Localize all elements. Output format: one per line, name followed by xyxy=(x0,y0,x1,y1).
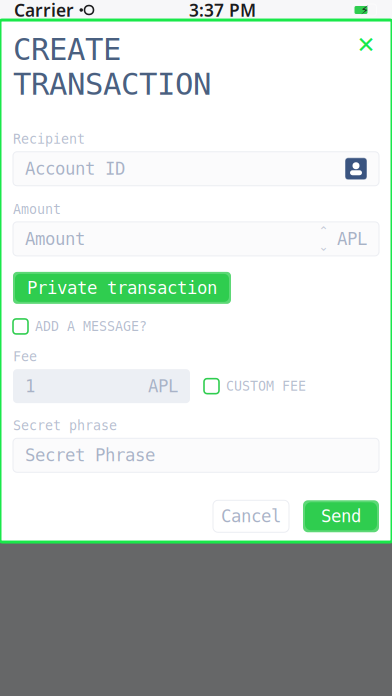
staticText: Private transaction xyxy=(27,278,217,298)
button[interactable]: Account ID xyxy=(13,152,379,186)
button[interactable]: CUSTOM FEE xyxy=(204,379,306,394)
button[interactable]: Send xyxy=(303,500,379,532)
button[interactable]: 1 xyxy=(13,369,190,403)
staticText: ⌄ xyxy=(318,240,328,253)
staticText: Secret phrase xyxy=(13,418,117,433)
button[interactable]: Secret Phrase xyxy=(13,438,379,472)
staticText: Account ID xyxy=(25,159,125,179)
staticText: Carrier xyxy=(14,0,74,21)
staticText: ASSET TRANSFER xyxy=(34,154,160,170)
staticText: APL xyxy=(337,229,367,249)
staticText: ASSET TRANSFER xyxy=(34,41,160,58)
staticText: Secret Phrase xyxy=(25,445,155,465)
staticText: -0 xyxy=(340,154,358,170)
button[interactable]: ADD A MESSAGE? xyxy=(13,319,147,334)
staticText: Send xyxy=(321,506,361,526)
staticText: Confirmation: 555589 xyxy=(34,80,174,94)
staticText: CREATE TRANSACTION xyxy=(13,32,211,102)
staticText: 4/26/2020 6:11:19 PM xyxy=(34,175,174,189)
staticText: You xyxy=(34,220,61,237)
staticText: ⌃ xyxy=(318,224,328,238)
button[interactable]: Close xyxy=(353,32,379,58)
staticText: Recipient xyxy=(13,132,85,147)
staticText: Amount xyxy=(25,229,85,249)
staticText: Fee xyxy=(13,349,37,364)
staticText: ✕ xyxy=(356,32,375,58)
staticText: APL-FFG6-4RWF-U6L2-DXYLV xyxy=(166,221,358,236)
button[interactable]: Private transaction xyxy=(13,272,231,304)
button[interactable]: Cancel xyxy=(213,500,289,532)
staticText: 1 xyxy=(25,376,35,396)
staticText: Amount xyxy=(13,202,61,217)
staticText: ⚡︎ xyxy=(360,3,368,17)
staticText: 7/30/2020 7:42:32 PM xyxy=(34,63,174,76)
staticText: CUSTOM FEE xyxy=(226,379,306,394)
staticText: APL xyxy=(148,376,178,396)
staticText: 3:37 PM xyxy=(189,0,256,21)
button[interactable]: Amount xyxy=(13,222,379,256)
staticText: ADD A MESSAGE? xyxy=(35,319,147,334)
staticText: Cancel xyxy=(221,506,281,526)
